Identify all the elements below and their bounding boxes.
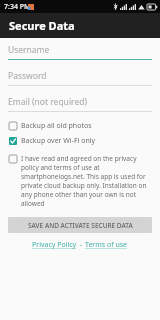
staticText: Secure Data xyxy=(9,18,75,33)
button[interactable]: Backup over Wi-Fi only xyxy=(8,135,152,147)
staticText: Backup over Wi-Fi only xyxy=(21,136,96,146)
button[interactable]: Privacy Policy xyxy=(31,240,78,250)
button[interactable]: Email (not required) xyxy=(8,96,152,112)
staticText: Username xyxy=(8,44,50,56)
staticText: Email (not required) xyxy=(8,96,87,108)
button[interactable]: Backup all old photos xyxy=(8,120,152,132)
button[interactable]: I have read and agreed on the privacy po… xyxy=(8,153,152,209)
button[interactable]: Password xyxy=(8,70,152,86)
staticText: - xyxy=(78,240,84,250)
staticText: SAVE AND ACTIVATE SECURE DATA xyxy=(28,221,133,230)
button[interactable]: Terms of use xyxy=(84,240,129,250)
staticText: I have read and agreed on the privacy po… xyxy=(21,154,152,208)
staticText: Backup all old photos xyxy=(21,121,92,131)
button[interactable]: Username xyxy=(8,44,152,60)
staticText: Password xyxy=(8,70,47,82)
staticText: 7:34 PM xyxy=(4,2,31,12)
button[interactable]: SAVE AND ACTIVATE SECURE DATA xyxy=(8,217,152,233)
